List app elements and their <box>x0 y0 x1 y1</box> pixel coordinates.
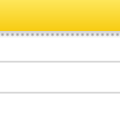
button[interactable] <box>0 93 120 120</box>
button[interactable]: Notes <box>0 0 120 31</box>
button[interactable] <box>0 62 120 93</box>
button[interactable] <box>0 40 120 62</box>
